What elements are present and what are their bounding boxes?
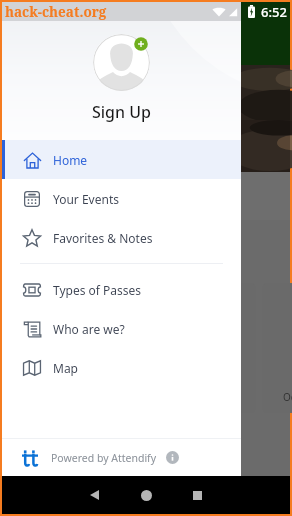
button[interactable]: Favorites & Notes <box>2 218 241 257</box>
button[interactable]: Who are we? <box>2 309 241 348</box>
staticText: Who are we? <box>53 321 125 337</box>
staticText: Favorites & Notes <box>53 230 153 246</box>
button[interactable]: Home <box>127 476 165 514</box>
staticText: 6:52 <box>261 3 287 21</box>
button[interactable]: Back <box>75 476 113 514</box>
other: Info <box>166 451 179 464</box>
button[interactable]: Home <box>2 140 241 179</box>
button[interactable]: Recent apps <box>178 476 216 514</box>
button[interactable]: Sign Up <box>92 101 151 123</box>
button[interactable]: Powered by Attendify <box>2 439 241 476</box>
staticText: Map <box>53 360 78 376</box>
staticText: Your Events <box>53 191 119 207</box>
button[interactable]: Your Events <box>2 179 241 218</box>
staticText: hack-cheat.org <box>5 3 107 21</box>
staticText: Home <box>53 152 88 168</box>
staticText: Types of Passes <box>53 282 142 298</box>
staticText: Powered by Attendify <box>51 451 157 465</box>
button[interactable]: Map <box>2 348 241 387</box>
other: Sign Up <box>134 37 148 51</box>
button[interactable]: Types of Passes <box>2 270 241 309</box>
staticText: Oc <box>283 390 292 404</box>
